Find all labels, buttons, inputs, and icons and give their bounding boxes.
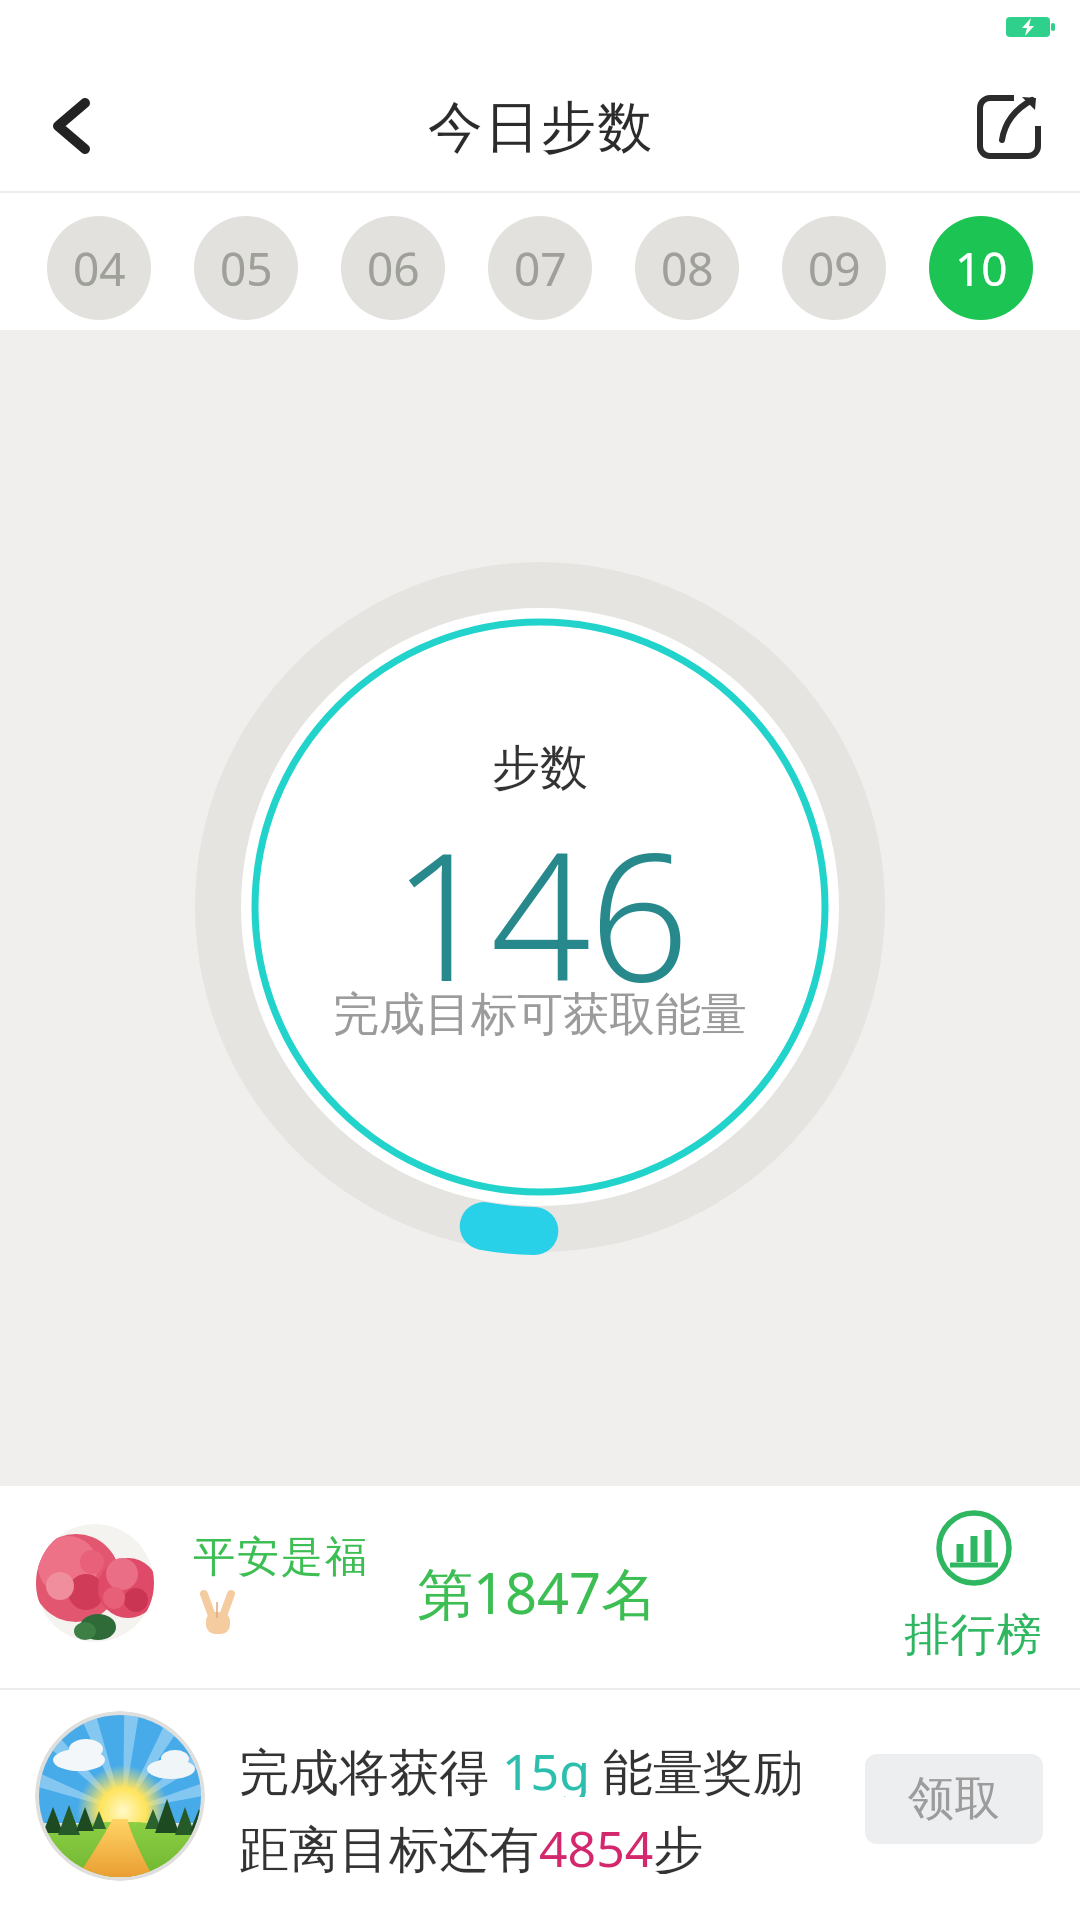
staticText: 完成目标可获取能量 — [333, 986, 747, 1044]
staticText: 10 — [955, 237, 1008, 300]
button[interactable]: 08 — [635, 216, 739, 320]
staticText: 领取 — [908, 1770, 1000, 1828]
staticText: 平安是福 — [192, 1531, 368, 1584]
button[interactable] — [40, 90, 110, 160]
button[interactable]: 10 — [929, 216, 1033, 320]
staticText: 第1847名 — [417, 1554, 658, 1630]
button[interactable]: 06 — [341, 216, 445, 320]
button[interactable]: 平安是福 — [0, 1486, 1080, 1688]
staticText: 05 — [220, 237, 273, 300]
button[interactable]: 07 — [488, 216, 592, 320]
button[interactable]: 05 — [194, 216, 298, 320]
staticText: 步数 — [492, 738, 588, 798]
staticText: 09 — [808, 237, 861, 300]
staticText: 146 — [392, 793, 688, 993]
button[interactable]: 04 — [47, 216, 151, 320]
staticText: 今日步数 — [427, 93, 653, 162]
button[interactable]: 09 — [782, 216, 886, 320]
staticText: 08 — [661, 237, 714, 300]
staticText: 排行榜 — [904, 1607, 1042, 1664]
staticText: 距离目标还有4854步 — [239, 1814, 704, 1874]
staticText: 07 — [514, 237, 567, 300]
button[interactable]: 领取 — [865, 1754, 1043, 1844]
staticText: 完成将获得 15g 能量奖励 — [239, 1737, 803, 1797]
staticText: 06 — [367, 237, 420, 300]
staticText: 04 — [73, 237, 126, 300]
button[interactable] — [974, 90, 1046, 162]
